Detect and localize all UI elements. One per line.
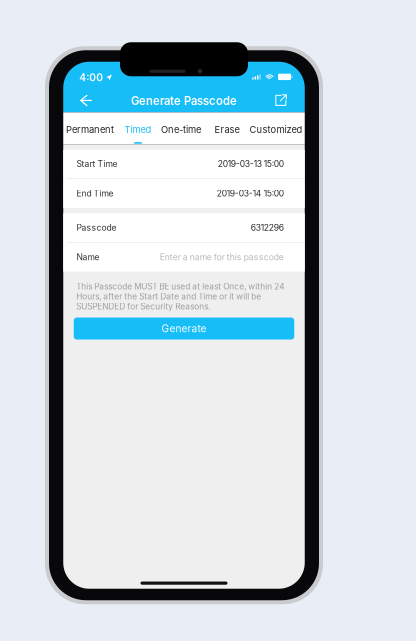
button[interactable]: Generate: [74, 318, 294, 340]
staticText: 2019-03-13 15:00: [218, 159, 284, 169]
staticText: Passcode: [76, 222, 116, 233]
staticText: Generate Passcode: [131, 94, 237, 108]
button[interactable]: Name: [63, 243, 305, 271]
button[interactable]: Passcode: [63, 213, 305, 242]
button[interactable]: Customized: [250, 112, 303, 145]
button[interactable]: Back: [75, 89, 98, 112]
staticText: Name: [76, 252, 99, 262]
staticText: Generate: [161, 322, 206, 335]
staticText: 2019-03-14 15:00: [217, 188, 284, 199]
staticText: One-time: [161, 124, 201, 135]
button[interactable]: Erase: [215, 112, 240, 145]
button[interactable]: Permanent: [66, 112, 114, 145]
staticText: 4:00: [79, 71, 103, 84]
staticText: 6312296: [251, 222, 284, 233]
staticText: This Passcode MUST BE used at least Once…: [76, 281, 284, 311]
button[interactable]: Timed: [124, 112, 151, 145]
staticText: End Time: [76, 188, 113, 199]
button[interactable]: Share: [269, 89, 293, 113]
staticText: Permanent: [66, 124, 114, 135]
staticText: Timed: [124, 124, 151, 135]
staticText: Customized: [250, 124, 303, 135]
button[interactable]: Start Time: [63, 150, 305, 178]
staticText: Enter a name for this passcode: [160, 252, 284, 262]
staticText: Erase: [215, 124, 240, 135]
staticText: Start Time: [76, 159, 117, 169]
button[interactable]: One-time: [161, 112, 201, 145]
button[interactable]: End Time: [63, 179, 305, 208]
